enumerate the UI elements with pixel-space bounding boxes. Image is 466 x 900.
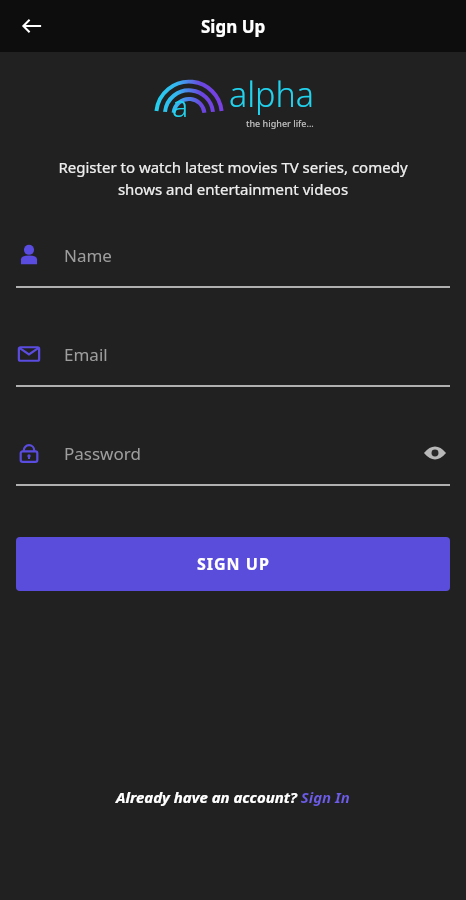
- button[interactable]: Name: [0, 238, 466, 288]
- button[interactable]: Already have an account? Sign In: [0, 780, 466, 814]
- button[interactable]: Back: [12, 6, 52, 46]
- staticText: Already have an account? Sign In: [116, 787, 350, 807]
- button[interactable]: Email: [0, 337, 466, 387]
- other: Name: [16, 242, 42, 268]
- staticText: the higher life...: [246, 117, 314, 129]
- staticText: a: [172, 85, 189, 126]
- button[interactable]: Show password: [420, 438, 450, 468]
- staticText: SIGN UP: [197, 553, 270, 575]
- staticText: Name: [64, 244, 112, 267]
- other: Email: [16, 341, 42, 367]
- staticText: Register to watch latest movies TV serie…: [18, 157, 448, 200]
- staticText: alpha: [229, 71, 314, 117]
- staticText: Sign Up: [201, 15, 266, 38]
- button[interactable]: Password: [0, 436, 466, 486]
- staticText: Email: [64, 343, 108, 366]
- other: Password: [16, 440, 42, 466]
- button[interactable]: SIGN UP: [16, 537, 450, 591]
- staticText: Password: [64, 442, 141, 465]
